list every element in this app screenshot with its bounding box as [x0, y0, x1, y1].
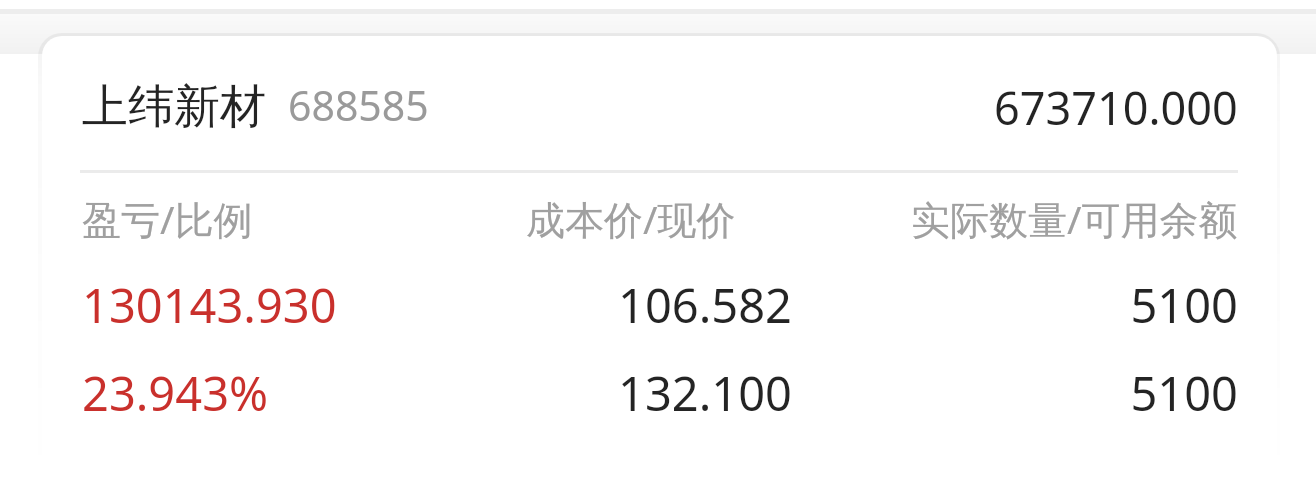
staticText: 盈亏/比例	[82, 192, 253, 245]
staticText: 130143.930	[82, 273, 337, 337]
button[interactable]: 130143.930	[42, 261, 1277, 349]
staticText: 成本价/现价	[526, 192, 736, 245]
staticText: 106.582	[618, 273, 792, 337]
staticText: 实际数量/可用余额	[911, 192, 1238, 245]
button[interactable]: 上纬新材	[42, 36, 1277, 484]
staticText: 上纬新材	[82, 78, 266, 136]
staticText: 673710.000	[994, 77, 1238, 138]
staticText: 23.943%	[82, 361, 269, 425]
staticText: 688585	[288, 77, 429, 133]
staticText: 5100	[1130, 361, 1238, 425]
staticText: 132.100	[618, 361, 792, 425]
button[interactable]: 23.943%	[42, 349, 1277, 437]
staticText: 5100	[1130, 273, 1238, 337]
